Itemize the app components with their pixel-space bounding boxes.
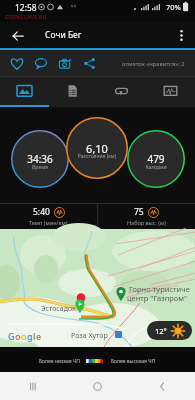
staticText: Калории bbox=[127, 164, 185, 171]
button[interactable]: Charts bbox=[146, 77, 195, 107]
button[interactable]: More options bbox=[169, 23, 194, 48]
staticText: 479 bbox=[127, 152, 185, 166]
staticText: Время bbox=[11, 164, 69, 171]
button[interactable]: Home bbox=[65, 372, 130, 400]
staticText: Набор выс. (м) bbox=[127, 219, 166, 226]
staticText: 34:36 bbox=[11, 152, 69, 166]
staticText: 70% bbox=[166, 2, 181, 12]
staticText: 75 bbox=[134, 206, 144, 218]
staticText: e bbox=[36, 330, 42, 342]
button[interactable]: Weather bbox=[147, 321, 192, 340]
button[interactable]: Share bbox=[77, 50, 101, 77]
button[interactable]: Comment bbox=[29, 50, 53, 77]
staticText: центр "Газпром" bbox=[127, 293, 188, 303]
staticText: 12° bbox=[155, 326, 167, 336]
staticText: Эстосадок bbox=[41, 304, 76, 314]
staticText: Более низкая ЧП bbox=[39, 358, 80, 365]
staticText: 12:58 bbox=[15, 2, 37, 14]
staticText: g bbox=[27, 330, 33, 342]
staticText: Расстояние (км) bbox=[66, 153, 128, 160]
staticText: G bbox=[8, 330, 15, 342]
button[interactable]: Back bbox=[130, 372, 195, 400]
staticText: Горно-туристиче bbox=[129, 284, 190, 294]
staticText: COINS.LAVE.RU bbox=[5, 13, 47, 20]
button[interactable]: Recents bbox=[0, 372, 65, 400]
staticText: 5:40 bbox=[33, 206, 50, 218]
staticText: Сочи Бег bbox=[45, 29, 82, 41]
button[interactable]: Back bbox=[5, 23, 30, 48]
button[interactable]: Like bbox=[5, 50, 29, 77]
button[interactable]: Laps bbox=[97, 77, 146, 107]
staticText: o bbox=[15, 330, 21, 342]
staticText: o bbox=[21, 330, 27, 342]
staticText: Роза Хутор bbox=[71, 331, 108, 341]
staticText: Темп (мин/км) bbox=[29, 219, 68, 226]
staticText: 6,10 bbox=[66, 141, 128, 156]
staticText: l bbox=[33, 330, 36, 342]
staticText: отметок «нравится»: 2 bbox=[122, 60, 185, 68]
button[interactable]: Details bbox=[48, 77, 97, 107]
button[interactable]: Add photo bbox=[53, 50, 77, 77]
staticText: Более высокая ЧП bbox=[111, 358, 156, 365]
button[interactable]: Photos bbox=[0, 77, 48, 107]
